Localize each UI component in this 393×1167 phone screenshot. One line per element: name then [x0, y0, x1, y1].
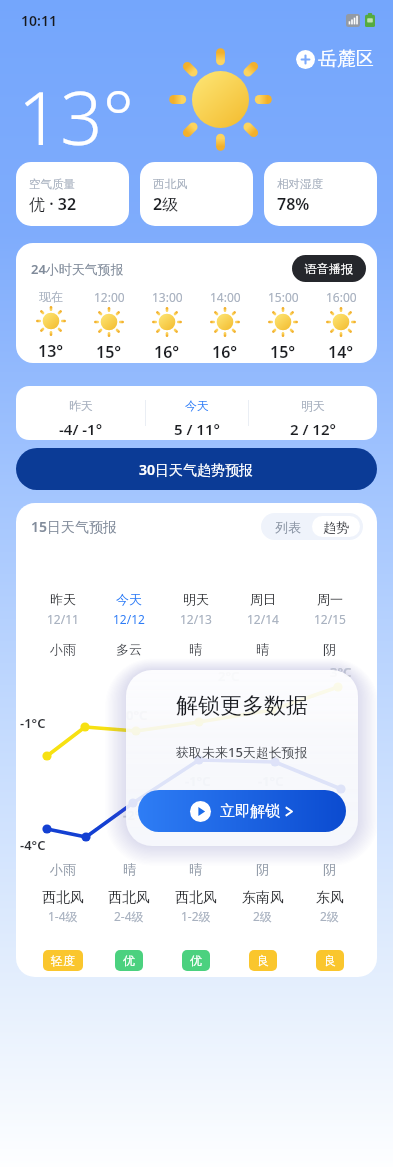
staticText: 2°C: [218, 667, 240, 685]
staticText: 晴: [189, 641, 202, 657]
staticText: 阴: [323, 861, 336, 877]
staticText: 西北风: [42, 889, 84, 907]
button[interactable]: 15:00: [254, 289, 312, 363]
staticText: 多云: [116, 641, 142, 657]
staticText: 今天: [116, 591, 142, 607]
staticText: 2级: [320, 908, 339, 924]
button[interactable]: 今天: [146, 386, 248, 440]
staticText: -1°C: [20, 714, 46, 732]
staticText: 周一: [317, 591, 343, 607]
button[interactable]: 优: [182, 950, 210, 971]
staticText: 明天: [183, 591, 209, 607]
staticText: 西北风: [153, 177, 188, 191]
staticText: -4°C: [20, 836, 46, 854]
button[interactable]: 岳麓区: [296, 47, 375, 71]
staticText: 15日天气预报: [31, 517, 118, 536]
staticText: 15°: [96, 341, 122, 363]
staticText: 西北风: [108, 889, 150, 907]
staticText: 空气质量: [29, 177, 75, 191]
staticText: 周日: [250, 591, 276, 607]
staticText: 昨天: [69, 398, 93, 413]
staticText: 16:00: [326, 289, 357, 305]
button[interactable]: 趋势: [312, 516, 360, 537]
button[interactable]: 良: [316, 950, 344, 971]
staticText: 东风: [316, 889, 344, 907]
button[interactable]: 轻度: [43, 950, 83, 971]
staticText: 24小时天气预报: [31, 260, 124, 278]
button[interactable]: 优: [115, 950, 143, 971]
button[interactable]: 良: [249, 950, 277, 971]
staticText: 78%: [277, 193, 310, 215]
staticText: 明天: [301, 398, 325, 413]
button[interactable]: 16:00: [312, 289, 370, 363]
staticText: 10:11: [21, 11, 57, 30]
button[interactable]: 明天: [249, 386, 377, 440]
staticText: -4/ -1°: [59, 419, 103, 439]
staticText: 2级: [253, 908, 272, 924]
staticText: 相对湿度: [277, 177, 323, 191]
staticText: 13:00: [152, 289, 183, 305]
button[interactable]: 现在: [22, 289, 80, 362]
staticText: 30日天气趋势预报: [139, 460, 254, 479]
button[interactable]: 空气质量: [16, 162, 129, 226]
staticText: 昨天: [50, 591, 76, 607]
staticText: 2级: [153, 193, 179, 215]
staticText: 13°: [38, 340, 64, 362]
staticText: 小雨: [50, 641, 76, 657]
staticText: 轻度: [51, 953, 75, 968]
staticText: 今天: [185, 398, 209, 413]
staticText: 良: [257, 953, 269, 968]
staticText: 1-4级: [48, 908, 78, 924]
staticText: 12/12: [113, 611, 145, 627]
button[interactable]: 语音播报: [292, 255, 366, 282]
staticText: 西北风: [175, 889, 217, 907]
staticText: 现在: [39, 289, 63, 304]
staticText: 14:00: [210, 289, 241, 305]
button[interactable]: 13:00: [138, 289, 196, 363]
staticText: 13°: [18, 66, 135, 167]
button[interactable]: 30日天气趋势预报: [16, 448, 377, 490]
staticText: 晴: [123, 861, 136, 877]
staticText: 良: [324, 953, 336, 968]
staticText: 12/15: [314, 611, 346, 627]
staticText: 15°: [270, 341, 296, 363]
staticText: 列表: [275, 519, 301, 535]
button[interactable]: 列表: [264, 516, 312, 537]
button[interactable]: 相对湿度: [264, 162, 377, 226]
staticText: 小雨: [50, 861, 76, 877]
staticText: 16°: [212, 341, 238, 363]
button[interactable]: 昨天: [16, 386, 145, 440]
staticText: 优: [123, 953, 135, 968]
staticText: 12/14: [247, 611, 279, 627]
staticText: 解锁更多数据: [176, 692, 308, 720]
staticText: 15:00: [268, 289, 299, 305]
staticText: 阴: [323, 641, 336, 657]
staticText: 14°: [328, 341, 354, 363]
staticText: 3°C: [330, 663, 352, 681]
staticText: 优 · 32: [29, 193, 77, 215]
staticText: 2-4级: [114, 908, 144, 924]
staticText: 晴: [189, 861, 202, 877]
button[interactable]: 14:00: [196, 289, 254, 363]
staticText: 阴: [256, 861, 269, 877]
staticText: 获取未来15天超长预报: [176, 743, 308, 761]
staticText: 12/13: [180, 611, 212, 627]
staticText: 语音播报: [305, 261, 353, 276]
staticText: 5 / 11°: [174, 419, 220, 439]
staticText: 12:00: [94, 289, 125, 305]
staticText: 东南风: [242, 889, 284, 907]
staticText: 立即解锁: [220, 802, 280, 821]
staticText: 晴: [256, 641, 269, 657]
staticText: 趋势: [323, 519, 349, 535]
staticText: -2°C: [123, 806, 149, 824]
button[interactable]: 立即解锁: [138, 790, 346, 832]
button[interactable]: 12:00: [80, 289, 138, 363]
button[interactable]: 西北风: [140, 162, 253, 226]
staticText: 16°: [154, 341, 180, 363]
staticText: 优: [190, 953, 202, 968]
staticText: 12/11: [47, 611, 79, 627]
staticText: 2 / 12°: [290, 419, 336, 439]
